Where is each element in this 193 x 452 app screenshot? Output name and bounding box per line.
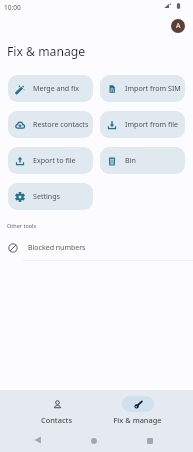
button[interactable]: Recents [141,432,159,450]
staticText: Contacts [41,415,72,425]
button[interactable]: Restore contacts [8,111,93,138]
staticText: Import from file [125,119,179,129]
staticText: Export to file [33,155,76,165]
staticText: 10:00 [4,3,21,12]
button[interactable]: Export to file [8,147,93,174]
staticText: Fix & manage [113,415,162,425]
button[interactable]: Home [85,432,103,450]
button[interactable]: Import from file [100,111,185,138]
button[interactable]: Settings [8,183,93,210]
button[interactable]: Account [171,19,185,33]
button[interactable]: Merge and fix [8,75,93,102]
staticText: Fix & manage [7,43,86,60]
button[interactable]: Back [29,431,47,449]
staticText: Bin [125,155,136,165]
staticText: Import from SIM [125,83,181,93]
staticText: Restore contacts [33,119,89,129]
button[interactable]: Blocked numbers [0,238,193,258]
button[interactable]: Fix & manage [97,396,178,425]
staticText: Merge and fix [33,83,80,93]
button[interactable]: Import from SIM [100,75,185,102]
staticText: A [176,21,181,31]
staticText: Other tools [7,222,37,229]
staticText: Blocked numbers [28,243,86,253]
button[interactable]: Contacts [16,396,97,425]
staticText: Settings [33,191,60,201]
button[interactable]: Bin [100,147,185,174]
